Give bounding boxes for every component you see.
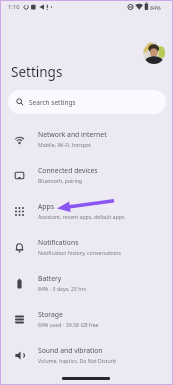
staticText: Storage (38, 310, 63, 319)
staticText: 69% used - 39.58 GB free (38, 321, 99, 328)
button[interactable]: Connected devices (0, 157, 173, 193)
button[interactable]: Battery (0, 265, 173, 301)
staticText: Network and internet (38, 130, 107, 139)
button[interactable]: Sound and vibration (0, 337, 173, 373)
button[interactable]: Apps (0, 193, 173, 229)
staticText: Settings (11, 63, 63, 81)
staticText: 84% (150, 4, 161, 11)
staticText: Volume, haptics, Do Not Disturb (38, 357, 117, 364)
button[interactable] (143, 42, 165, 64)
staticText: Sound and vibration (38, 346, 103, 355)
button[interactable]: Network and internet (0, 121, 173, 157)
staticText: Notifications (38, 238, 79, 247)
staticText: Notification history, conversations (38, 249, 122, 256)
staticText: Search settings (29, 98, 76, 107)
staticText: Connected devices (38, 166, 98, 175)
staticText: 1:10 (8, 3, 20, 11)
button[interactable]: Search settings (8, 90, 166, 114)
staticText: Assistant, recent apps, default apps (38, 213, 125, 220)
button[interactable]: Storage (0, 301, 173, 337)
staticText: Apps (38, 202, 54, 211)
staticText: Mobile, Wi-Fi, hotspot (38, 141, 91, 148)
staticText: 84% - 3 days, 23 hrs (38, 285, 87, 292)
staticText: Bluetooth, pairing (38, 177, 83, 184)
button[interactable]: Notifications (0, 229, 173, 265)
staticText: Battery (38, 274, 62, 283)
